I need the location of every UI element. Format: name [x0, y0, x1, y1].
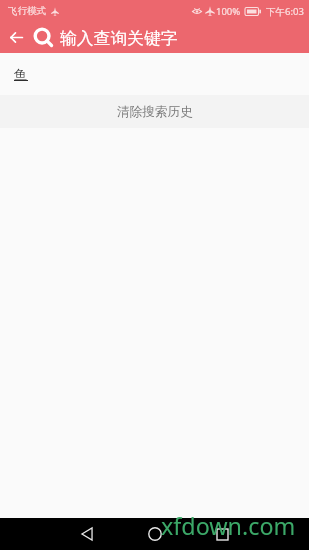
staticText: 清除搜索历史 — [117, 104, 193, 120]
button[interactable]: Back — [0, 22, 32, 53]
staticText: 输入查询关键字 — [60, 28, 178, 49]
button[interactable]: Recents — [202, 518, 243, 550]
button[interactable]: Back — [66, 518, 107, 550]
button[interactable]: 鱼 — [0, 53, 309, 95]
staticText: 鱼 — [14, 66, 27, 82]
staticText: xfdown.com — [161, 510, 296, 542]
button[interactable]: 清除搜索历史 — [0, 95, 309, 128]
button[interactable]: Home — [134, 518, 176, 550]
staticText: 下午6:03 — [266, 5, 304, 18]
staticText: 飞行模式 — [8, 5, 46, 17]
button[interactable]: Search — [32, 22, 55, 53]
staticText: 100% — [216, 5, 241, 18]
